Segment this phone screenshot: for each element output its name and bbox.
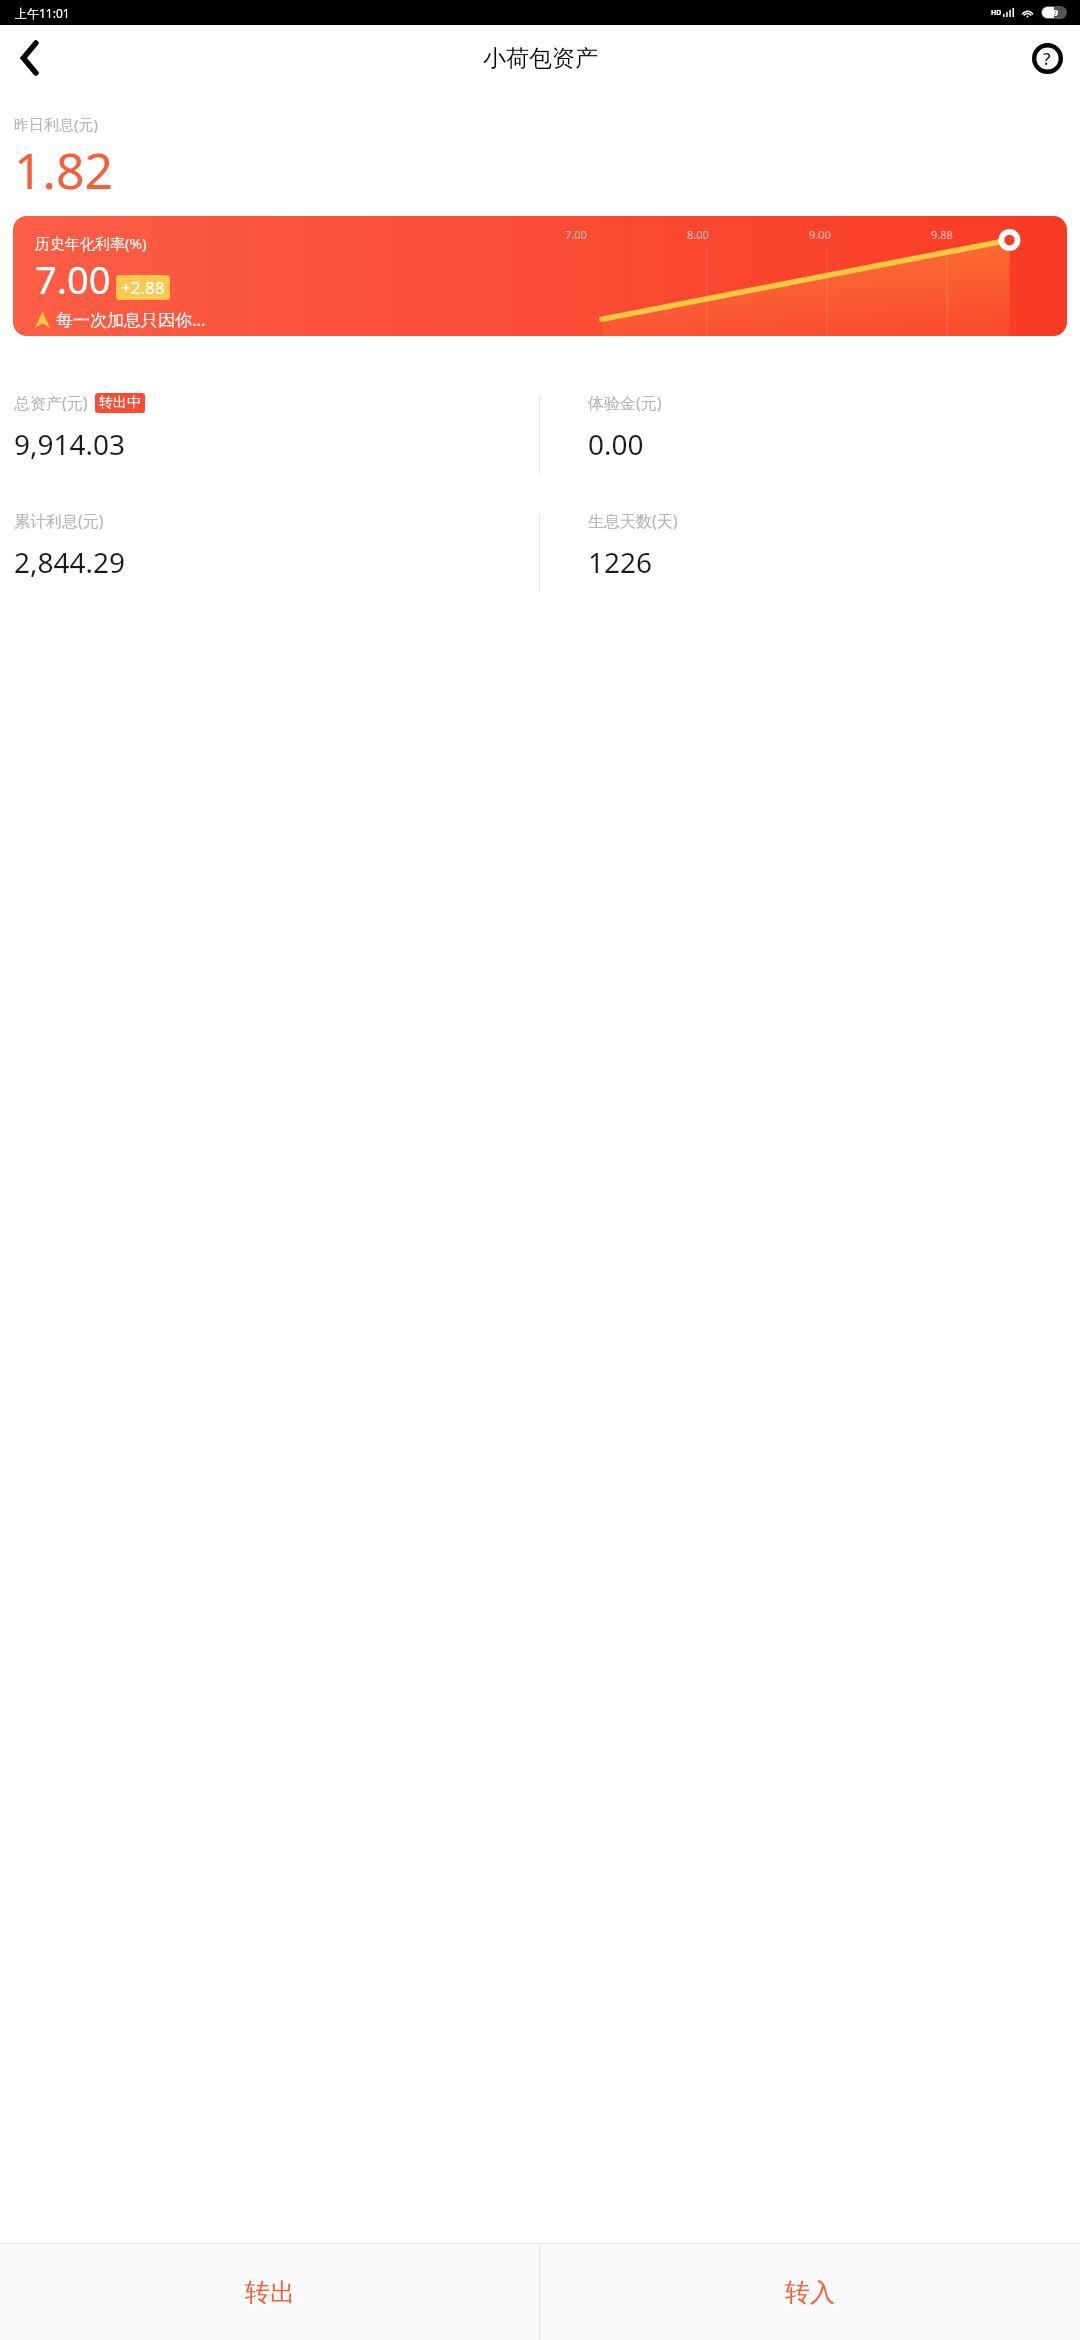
staticText: 总资产(元) <box>14 392 88 414</box>
staticText: 1.82 <box>14 136 114 204</box>
staticText: 转入 <box>785 2277 835 2308</box>
staticText: 49 <box>1049 7 1059 18</box>
staticText: 9.88 <box>931 227 1053 242</box>
staticText: 8.00 <box>687 227 809 242</box>
staticText: 体验金(元) <box>588 392 662 414</box>
staticText: HD <box>991 8 1002 18</box>
staticText: 1226 <box>588 543 653 581</box>
button[interactable]: Help <box>1014 25 1080 91</box>
staticText: 7.00 <box>35 253 111 305</box>
staticText: 生息天数(天) <box>588 510 678 532</box>
staticText: ? <box>1043 47 1051 70</box>
staticText: 历史年化利率(%) <box>35 233 147 253</box>
staticText: 小荷包资产 <box>483 44 598 73</box>
button[interactable]: Back <box>0 28 60 88</box>
button[interactable]: 7.00 <box>13 216 1067 336</box>
staticText: 转出中 <box>99 394 141 412</box>
staticText: 累计利息(元) <box>14 510 104 532</box>
staticText: 昨日利息(元) <box>14 114 99 134</box>
staticText: 每一次加息只因你... <box>56 308 206 331</box>
button[interactable]: 转入 <box>540 2244 1080 2340</box>
staticText: 转出 <box>245 2277 295 2308</box>
staticText: 0.00 <box>588 425 644 463</box>
button[interactable]: 转出 <box>0 2244 539 2340</box>
staticText: 上午11:01 <box>15 5 70 21</box>
staticText: 2,844.29 <box>14 543 126 581</box>
staticText: 9.00 <box>809 227 931 242</box>
staticText: +2.88 <box>121 276 165 299</box>
staticText: 7.00 <box>565 227 687 242</box>
staticText: 9,914.03 <box>14 425 126 463</box>
